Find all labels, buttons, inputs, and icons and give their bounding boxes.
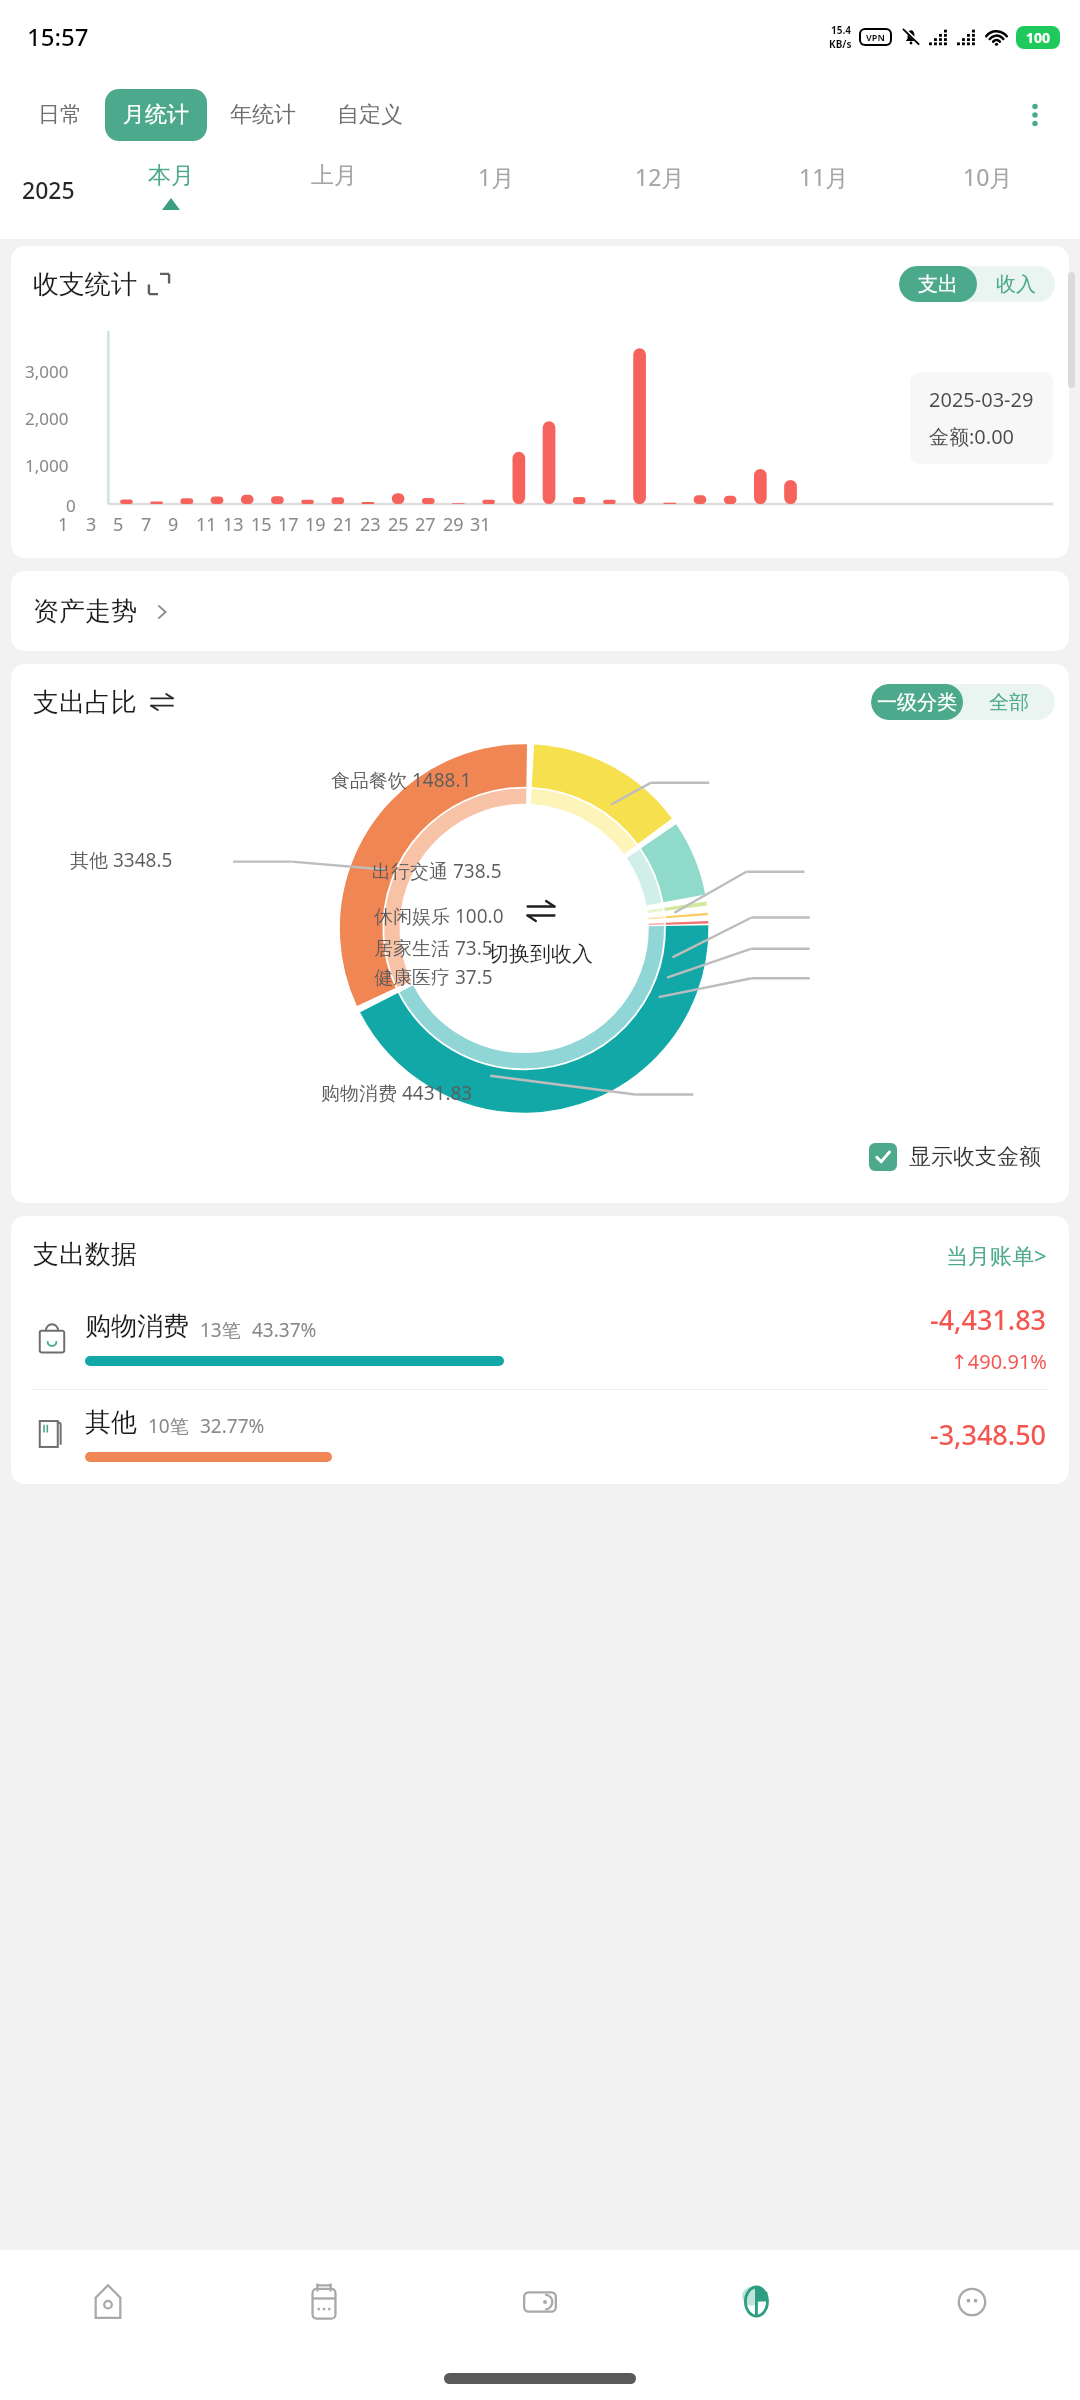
button[interactable]: More (864, 2250, 1080, 2354)
staticText: 金额:0.00 (929, 423, 1015, 450)
button[interactable]: 资产走势 (11, 571, 1069, 651)
staticText: 11月 (799, 161, 849, 192)
staticText: 19 (305, 512, 326, 537)
staticText: 食品餐饮 1488.1 (331, 767, 472, 793)
button[interactable]: 年统计 (212, 89, 314, 141)
staticText: 2,000 (25, 407, 69, 430)
button[interactable]: 收入 (977, 266, 1055, 302)
staticText: 32.77% (200, 1413, 265, 1439)
staticText: 15 (251, 512, 272, 537)
staticText: 收支统计 (33, 268, 137, 301)
staticText: -4,431.83 (930, 1301, 1047, 1338)
staticText: KB/s (829, 37, 852, 51)
staticText: 月统计 (123, 101, 189, 129)
staticText: 17 (278, 512, 299, 537)
staticText: 收入 (996, 272, 1036, 297)
staticText: 上月 (311, 161, 357, 190)
staticText: 11 (196, 512, 217, 537)
staticText: 31 (470, 512, 491, 537)
staticText: 100 (1026, 28, 1051, 47)
staticText: 当月账单> (946, 1240, 1047, 1270)
staticText: 10笔 (148, 1413, 189, 1439)
staticText: 支出占比 (33, 686, 137, 719)
button[interactable]: 11月 (742, 161, 906, 192)
staticText: 5 (113, 512, 124, 537)
button[interactable]: 购物消费 (11, 1285, 1069, 1389)
staticText: 9 (168, 512, 179, 537)
staticText: 43.37% (252, 1317, 317, 1343)
staticText: 15.4 (831, 23, 851, 37)
button[interactable]: 上月 (252, 161, 415, 190)
staticText: 29 (443, 512, 464, 537)
staticText: 购物消费 4431.83 (321, 1080, 473, 1106)
staticText: 1,000 (25, 454, 69, 477)
button[interactable]: Calendar (216, 2250, 432, 2354)
staticText: 1月 (478, 161, 515, 192)
staticText: 其他 3348.5 (70, 847, 173, 873)
staticText: 7 (141, 512, 152, 537)
staticText: 全部 (989, 690, 1029, 715)
staticText: 3 (86, 512, 97, 537)
staticText: 2025 (22, 174, 75, 205)
button[interactable]: Swap (149, 689, 175, 715)
button[interactable]: 一级分类 (871, 684, 963, 720)
button[interactable]: 当月账单> (946, 1240, 1047, 1270)
staticText: 2025-03-29 (929, 386, 1034, 413)
button[interactable]: 全部 (963, 684, 1055, 720)
staticText: 23 (360, 512, 381, 537)
staticText: 年统计 (230, 101, 296, 129)
staticText: 显示收支金额 (909, 1143, 1041, 1171)
staticText: 出行交通 738.5 (372, 858, 502, 884)
staticText: 3,000 (25, 360, 69, 383)
staticText: VPN (866, 31, 885, 43)
button[interactable]: 月统计 (105, 89, 207, 141)
button[interactable]: Statistics (648, 2250, 864, 2354)
staticText: 其他 (85, 1406, 137, 1439)
button[interactable]: 切换到收入 (488, 895, 593, 967)
staticText: 健康医疗 37.5 (374, 964, 493, 990)
button[interactable]: 其他 (11, 1390, 1069, 1476)
button[interactable]: Fullscreen (147, 272, 171, 296)
staticText: 日常 (38, 101, 82, 129)
staticText: 支出数据 (33, 1238, 137, 1271)
button[interactable]: 本月 (89, 161, 252, 210)
staticText: 一级分类 (877, 690, 957, 715)
button[interactable]: More options (1012, 92, 1058, 138)
button[interactable]: Home (0, 2250, 216, 2354)
staticText: 13 (223, 512, 244, 537)
staticText: 10月 (963, 161, 1013, 192)
button[interactable]: 10月 (906, 161, 1070, 192)
staticText: 本月 (148, 161, 194, 190)
staticText: 资产走势 (33, 595, 137, 628)
button[interactable]: Wallet (432, 2250, 648, 2354)
staticText: 支出 (918, 272, 958, 297)
staticText: 切换到收入 (488, 941, 593, 967)
staticText: -3,348.50 (930, 1416, 1047, 1453)
button[interactable]: 显示收支金额 (863, 1137, 1047, 1177)
staticText: 13笔 (200, 1317, 241, 1343)
staticText: 居家生活 73.5 (374, 935, 493, 961)
staticText: 27 (415, 512, 436, 537)
staticText: 自定义 (337, 101, 403, 129)
staticText: 21 (333, 512, 354, 537)
button[interactable]: 日常 (20, 89, 100, 141)
staticText: 25 (388, 512, 409, 537)
button[interactable]: 12月 (578, 161, 742, 192)
staticText: 12月 (635, 161, 685, 192)
staticText: 休闲娱乐 100.0 (374, 903, 504, 929)
button[interactable]: 支出 (899, 266, 977, 302)
staticText: 1 (58, 512, 69, 537)
staticText: 购物消费 (85, 1310, 189, 1343)
staticText: 0 (66, 494, 76, 517)
button[interactable]: 自定义 (319, 89, 421, 141)
staticText: ↑490.91% (951, 1348, 1047, 1375)
staticText: 15:57 (27, 20, 89, 53)
button[interactable]: 1月 (415, 161, 578, 192)
